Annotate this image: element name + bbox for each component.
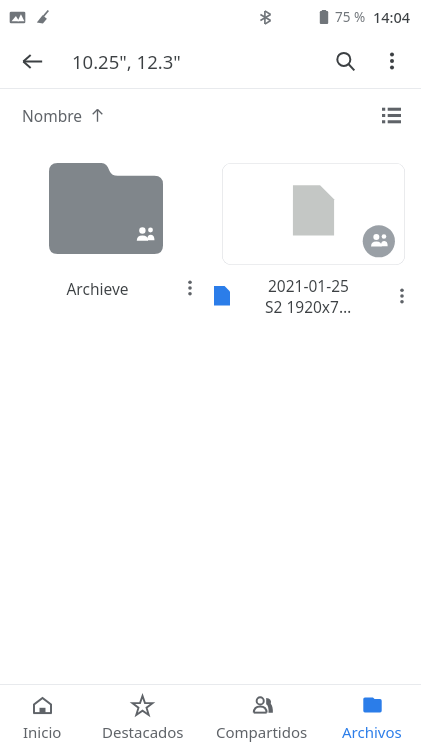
button[interactable]: Inicio (0, 685, 84, 748)
button[interactable]: Back (10, 39, 54, 83)
staticText: Inicio (23, 722, 62, 742)
staticText: 75 % (335, 8, 366, 26)
staticText: Archieve (66, 278, 129, 299)
button[interactable]: List view (369, 93, 413, 137)
staticText: Archivos (342, 722, 402, 742)
button[interactable] (222, 163, 405, 265)
button[interactable]: Archieve options (170, 268, 210, 308)
button[interactable]: More options (369, 38, 415, 84)
button[interactable]: Destacados (84, 685, 201, 748)
button[interactable]: Nombre (14, 99, 113, 132)
button[interactable]: Archivos (323, 685, 421, 748)
staticText: 10.25", 12.3" (72, 49, 181, 74)
staticText: Compartidos (216, 722, 308, 742)
button[interactable]: Compartidos (201, 685, 323, 748)
staticText: 14:04 (373, 7, 411, 27)
button[interactable]: Search (321, 37, 369, 85)
staticText: S2 1920x7… (265, 296, 352, 317)
button[interactable]: File options (383, 277, 421, 315)
staticText: 2021-01-25 (268, 275, 349, 296)
staticText: Destacados (102, 722, 184, 742)
staticText: Nombre (22, 105, 83, 126)
button[interactable] (49, 163, 163, 254)
